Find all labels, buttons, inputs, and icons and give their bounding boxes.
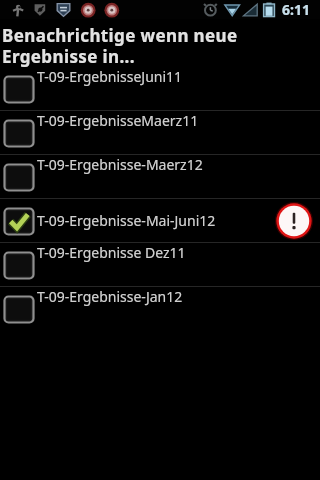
button[interactable]: T-09-Ergebnisse-Mai-Juni12 xyxy=(0,199,320,242)
button[interactable]: T-09-ErgebnisseMaerz11 xyxy=(0,111,320,154)
staticText: T-09-Ergebnisse-Jan12 xyxy=(37,287,183,306)
staticText: T-09-Ergebnisse-Mai-Juni12 xyxy=(37,211,216,230)
staticText: T-09-Ergebnisse-Maerz12 xyxy=(37,155,203,174)
staticText: T-09-Ergebnisse Dez11 xyxy=(37,243,186,262)
staticText: Benachrichtige wenn neue Ergebnisse in..… xyxy=(2,24,238,68)
button[interactable]: T-09-Ergebnisse Dez11 xyxy=(0,243,320,286)
button[interactable]: T-09-Ergebnisse-Jan12 xyxy=(0,287,320,330)
staticText: T-09-ErgebnisseMaerz11 xyxy=(37,111,199,130)
button[interactable]: T-09-ErgebnisseJuni11 xyxy=(0,67,320,110)
staticText: T-09-ErgebnisseJuni11 xyxy=(37,67,183,86)
other: Error xyxy=(275,202,313,240)
button[interactable]: T-09-Ergebnisse-Maerz12 xyxy=(0,155,320,198)
staticText: 6:11 xyxy=(282,0,310,19)
